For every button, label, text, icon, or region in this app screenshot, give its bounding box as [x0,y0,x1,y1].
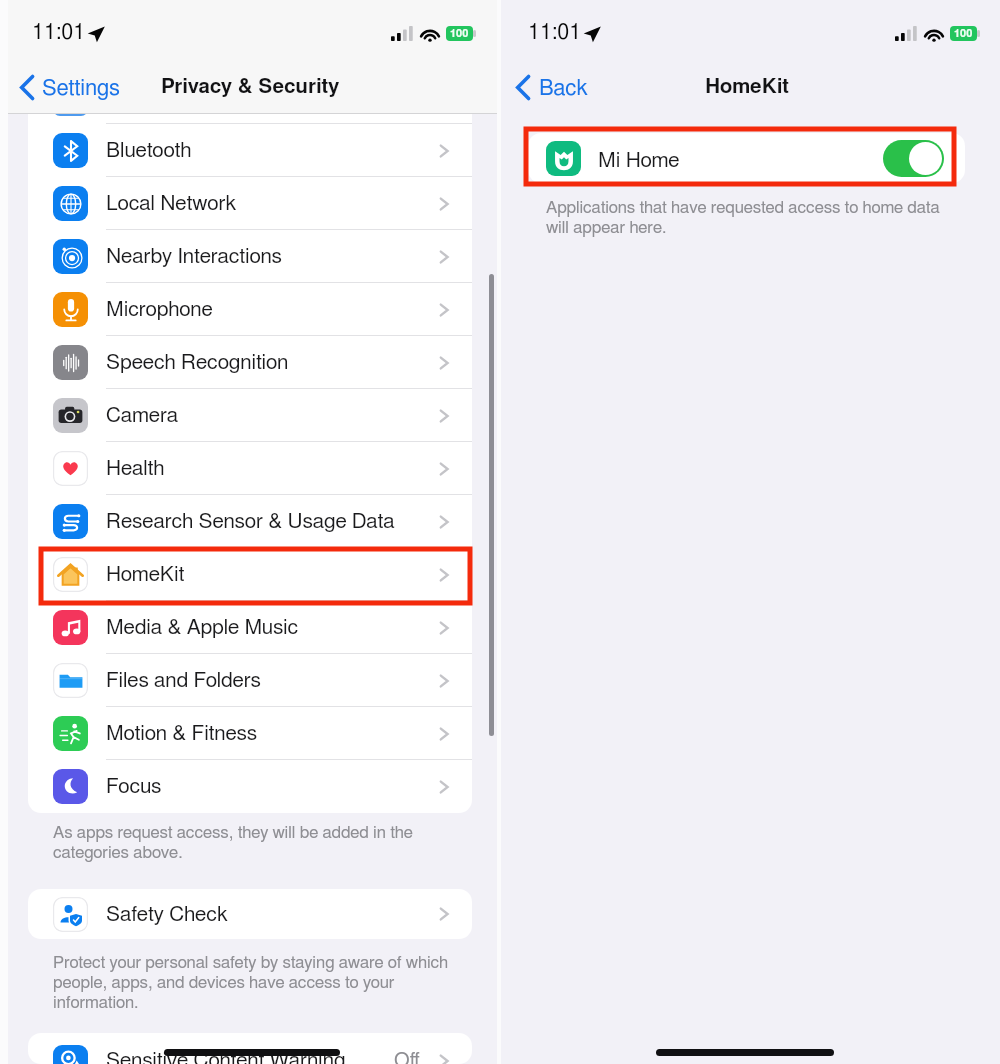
button[interactable]: Research Sensor & Usage Data [28,495,472,548]
staticText: Motion & Fitness [106,723,258,744]
button[interactable]: Media & Apple Music [28,601,472,654]
staticText: HomeKit [705,77,789,97]
staticText: Speech Recognition [106,352,289,373]
button[interactable]: Speech Recognition [28,336,472,389]
staticText: Focus [106,776,162,797]
staticText: Settings [42,77,120,99]
staticText: Back [539,77,588,99]
button[interactable]: Mi Home [528,133,965,183]
staticText: Camera [106,405,179,426]
button[interactable]: Bluetooth [28,124,472,177]
staticText: 100 [450,28,469,39]
staticText: Safety Check [106,904,228,925]
button[interactable]: Local Network [28,177,472,230]
staticText: Files and Folders [106,670,261,691]
button[interactable]: Sensitive Content Warning [28,1045,472,1064]
button[interactable]: Microphone [28,283,472,336]
staticText: Off [394,1051,420,1064]
staticText: 11:01 [32,22,86,44]
staticText: As apps request access, they will be add… [53,824,413,861]
staticText: Applications that have requested access … [546,199,940,236]
button[interactable]: Settings [20,75,120,100]
staticText: Protect your personal safety by staying … [53,954,449,1011]
staticText: Local Network [106,193,237,214]
staticText: Nearby Interactions [106,246,282,267]
button[interactable]: Camera [28,389,472,442]
staticText: Privacy & Security [161,77,340,97]
button[interactable]: Mi Home toggle [883,140,944,177]
button[interactable]: Motion & Fitness [28,707,472,760]
staticText: 11:01 [528,22,582,44]
staticText: Sensitive Content Warning [106,1050,346,1064]
button[interactable]: Safety Check [28,889,472,939]
staticText: Microphone [106,299,213,320]
staticText: Mi Home [598,150,680,171]
button[interactable]: HomeKit [28,548,472,601]
staticText: HomeKit [106,564,185,585]
staticText: 100 [954,28,973,39]
button[interactable]: Health [28,442,472,495]
staticText: Bluetooth [106,140,192,161]
button[interactable]: Nearby Interactions [28,230,472,283]
button[interactable]: Focus [28,760,472,813]
staticText: Research Sensor & Usage Data [106,511,395,532]
button[interactable]: Back [516,75,588,100]
staticText: Health [106,458,165,479]
staticText: Media & Apple Music [106,617,299,638]
button[interactable]: Files and Folders [28,654,472,707]
